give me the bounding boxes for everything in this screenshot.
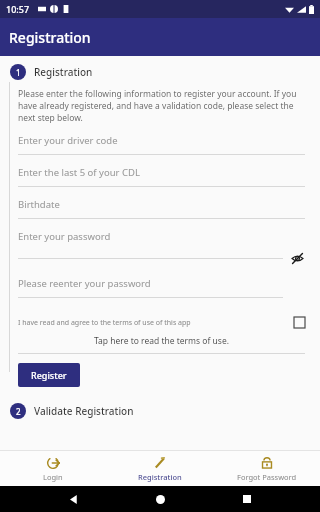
staticText: Registration [9, 28, 91, 47]
button[interactable]: Forgot Password [213, 453, 320, 485]
staticText: Enter your password [18, 230, 305, 243]
staticText: Login [43, 472, 63, 482]
button[interactable]: Enter the last 5 of your CDL [18, 166, 305, 198]
staticText: Please reenter your password [18, 277, 305, 290]
button[interactable]: Enter your password [18, 230, 305, 277]
staticText: Please enter the following information t… [18, 88, 305, 124]
staticText: Registration [138, 472, 182, 482]
button[interactable]: Registration [106, 453, 213, 485]
staticText: Registration [34, 65, 93, 79]
button[interactable]: Home [147, 486, 173, 512]
staticText: 10:57 [6, 3, 30, 15]
staticText: Validate Registration [34, 404, 134, 418]
button[interactable]: Birthdate [18, 198, 305, 230]
staticText: Birthdate [18, 198, 60, 211]
other: Agree to terms checkbox [294, 317, 305, 328]
staticText: I have read and agree to the terms of us… [18, 318, 294, 328]
button[interactable]: Tap here to read the terms of use. [18, 334, 305, 348]
staticText: Enter the last 5 of your CDL [18, 166, 140, 179]
button[interactable]: Please reenter your password [18, 277, 305, 309]
staticText: Enter your driver code [18, 134, 118, 147]
button[interactable]: Enter your driver code [18, 134, 305, 166]
button[interactable]: I have read and agree to the terms of us… [18, 317, 305, 328]
staticText: Forgot Password [237, 472, 297, 482]
button[interactable]: Recent apps [234, 486, 260, 512]
button[interactable]: Toggle password visibility [289, 250, 305, 266]
button[interactable]: Register [18, 363, 80, 387]
staticText: 2 [16, 406, 21, 417]
button[interactable]: Back [61, 486, 87, 512]
button[interactable]: 2 [0, 401, 320, 427]
staticText: Register [31, 369, 67, 381]
staticText: 1 [16, 67, 21, 78]
button[interactable]: Login [0, 453, 106, 485]
button[interactable]: 1 [0, 56, 320, 82]
